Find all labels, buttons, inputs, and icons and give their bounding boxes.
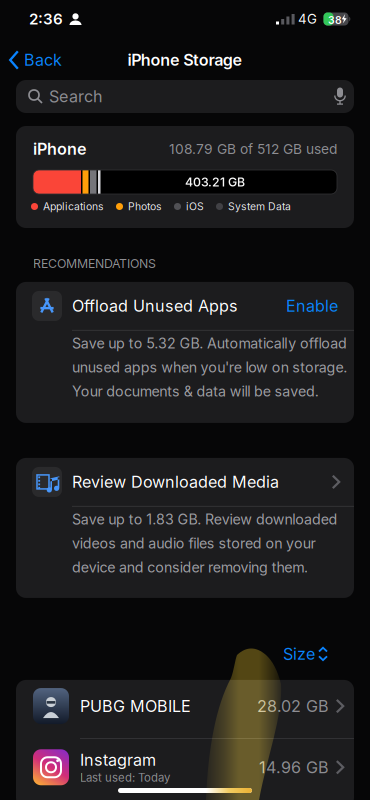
staticText: Review Downloaded Media <box>72 472 279 492</box>
button[interactable]: Back <box>0 50 62 70</box>
staticText: System Data <box>228 200 291 213</box>
staticText: Offload Unused Apps <box>72 296 238 316</box>
staticText: Save up to 5.32 GB. Automatically offloa… <box>72 335 347 400</box>
staticText: 38 <box>328 14 342 27</box>
staticText: Back <box>24 50 62 70</box>
staticText: Search <box>49 87 103 106</box>
button[interactable]: Offload Unused Apps <box>16 282 354 330</box>
staticText: RECOMMENDATIONS <box>33 256 156 271</box>
staticText: Applications <box>43 200 104 213</box>
staticText: iPhone Storage <box>127 50 242 70</box>
staticText: 403.21 GB <box>185 174 245 189</box>
staticText: 2:36 <box>29 10 63 28</box>
button[interactable]: Search <box>16 80 354 113</box>
staticText: iPhone <box>33 139 87 159</box>
button[interactable]: Instagram <box>16 739 354 800</box>
staticText: Last used: Today <box>80 771 170 784</box>
button[interactable]: Review Downloaded Media <box>16 458 354 506</box>
staticText: PUBG MOBILE <box>80 696 191 716</box>
staticText: iOS <box>186 200 204 213</box>
staticText: Size <box>283 644 315 664</box>
button[interactable]: PUBG MOBILE <box>16 679 354 738</box>
staticText: 28.02 GB <box>257 696 329 716</box>
staticText: Instagram <box>80 750 156 770</box>
staticText: 14.96 GB <box>259 757 329 777</box>
button[interactable]: Size <box>283 644 328 664</box>
staticText: Save up to 1.83 GB. Review downloaded vi… <box>72 511 338 576</box>
staticText: Enable <box>286 296 338 316</box>
staticText: Photos <box>128 200 162 213</box>
staticText: 4G <box>298 11 317 27</box>
staticText: 108.79 GB of 512 GB used <box>169 141 337 157</box>
